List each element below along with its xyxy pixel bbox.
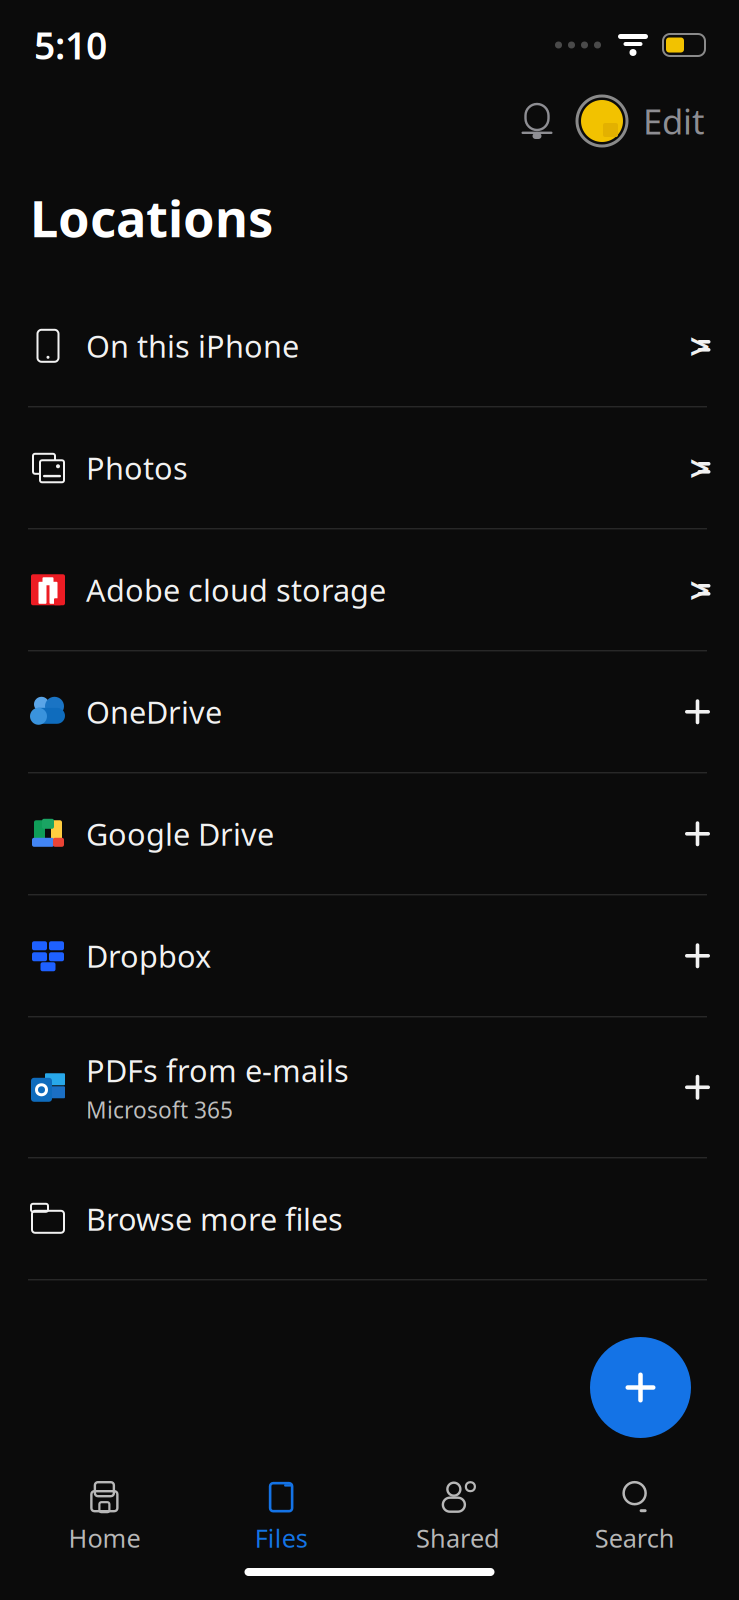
button[interactable]: Search	[546, 1473, 723, 1563]
button[interactable]: Google Drive	[0, 773, 739, 894]
staticText: Home	[68, 1521, 140, 1555]
button[interactable]: Shared	[369, 1473, 546, 1563]
button[interactable]: Browse more files	[0, 1158, 739, 1279]
staticText: >	[689, 444, 710, 492]
staticText: Google Drive	[86, 813, 274, 854]
staticText: Search	[595, 1521, 675, 1555]
button[interactable]: Photos	[0, 407, 739, 528]
button[interactable]: Adobe cloud storage	[0, 529, 739, 650]
button[interactable]: Home	[16, 1473, 193, 1563]
staticText: 5:10	[34, 20, 107, 70]
staticText: Photos	[86, 447, 188, 488]
staticText: Browse more files	[86, 1198, 343, 1239]
staticText: On this iPhone	[86, 325, 299, 366]
staticText: Shared	[416, 1521, 500, 1555]
button[interactable]: Profile	[569, 92, 635, 150]
button[interactable]: Create	[590, 1337, 691, 1438]
staticText: Edit	[643, 98, 705, 144]
staticText: >	[689, 566, 710, 614]
button[interactable]: Files	[193, 1473, 370, 1563]
button[interactable]: Dropbox	[0, 895, 739, 1016]
button[interactable]: Edit	[635, 92, 713, 150]
button[interactable]: On this iPhone	[0, 285, 739, 406]
staticText: Locations	[30, 184, 273, 251]
staticText: PDFs from e-mails	[86, 1050, 349, 1091]
staticText: >	[689, 322, 710, 370]
staticText: OneDrive	[86, 691, 222, 732]
staticText: Dropbox	[86, 935, 211, 976]
staticText: Files	[255, 1521, 308, 1555]
staticText: Microsoft 365	[86, 1095, 233, 1125]
staticText: Adobe cloud storage	[86, 569, 386, 610]
button[interactable]: OneDrive	[0, 651, 739, 772]
button[interactable]: PDFs from e-mails	[0, 1017, 739, 1157]
button[interactable]: Notifications	[505, 92, 569, 150]
